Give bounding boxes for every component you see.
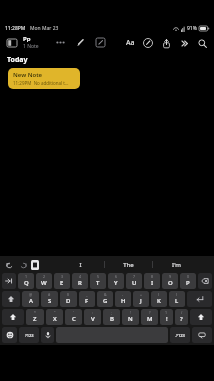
button[interactable]: + (133, 291, 149, 307)
button[interactable]: Tab (2, 273, 16, 289)
button[interactable]: Search (194, 35, 210, 51)
button[interactable]: Switch keyboard (192, 327, 212, 343)
staticText: H (121, 297, 126, 305)
button[interactable]: : (84, 309, 101, 325)
staticText: 9 (169, 274, 172, 279)
staticText: * (34, 310, 36, 315)
button[interactable]: - (115, 291, 131, 307)
staticText: 1 (165, 310, 168, 315)
staticText: O (168, 279, 173, 287)
button[interactable]: _ (79, 291, 95, 307)
button[interactable]: Markup (73, 35, 88, 50)
staticText: - (122, 292, 124, 297)
staticText: ?123 (25, 333, 34, 338)
button[interactable]: New Note (8, 68, 80, 89)
staticText: $ (67, 292, 70, 297)
button[interactable]: Clipboard (31, 260, 39, 270)
staticText: I (151, 279, 154, 287)
staticText: B (110, 315, 114, 323)
button[interactable]: Show sidebar (4, 35, 20, 51)
button[interactable]: Expand (176, 35, 192, 51)
button[interactable]: Share (158, 35, 174, 51)
button[interactable]: Emoji (2, 327, 17, 343)
button[interactable]: " (46, 309, 63, 325)
staticText: 1 (25, 274, 28, 279)
button[interactable]: Format (122, 35, 138, 51)
button[interactable]: ' (65, 309, 82, 325)
staticText: Q (24, 279, 29, 287)
button[interactable]: Shift (190, 309, 212, 325)
staticText: R (78, 279, 82, 287)
staticText: S (48, 297, 52, 305)
button[interactable]: ; (103, 309, 120, 325)
button[interactable]: ! (122, 309, 139, 325)
staticText: C (72, 315, 76, 323)
staticText: ( (158, 292, 160, 297)
button[interactable]: * (26, 309, 44, 325)
staticText: X (53, 315, 57, 323)
staticText: 0 (187, 274, 190, 279)
button[interactable]: .?123 (170, 327, 190, 343)
button[interactable]: # (41, 291, 58, 307)
button[interactable]: The (105, 258, 152, 271)
button[interactable]: ? (141, 309, 158, 325)
button[interactable]: 0 (180, 273, 196, 289)
button[interactable]: @ (22, 291, 39, 307)
button[interactable]: 5 (90, 273, 106, 289)
button[interactable]: 6 (108, 273, 124, 289)
button[interactable]: 4 (72, 273, 88, 289)
button[interactable]: Voice input (41, 327, 54, 343)
staticText: A (29, 297, 33, 305)
staticText: Mon Mar 23 (30, 25, 59, 32)
button[interactable]: 1 (18, 273, 34, 289)
staticText: ) (176, 292, 178, 297)
staticText: T (96, 279, 100, 287)
button[interactable]: Enter (187, 291, 212, 307)
staticText: New Note (13, 71, 43, 79)
staticText: 5 (97, 274, 100, 279)
button[interactable]: Undo (3, 259, 15, 271)
staticText: P (186, 279, 190, 287)
button[interactable]: ) (169, 291, 185, 307)
staticText: I (79, 261, 82, 269)
button[interactable]: 1 (160, 309, 173, 325)
button[interactable]: Shift (2, 291, 20, 307)
button[interactable]: 7 (126, 273, 142, 289)
button[interactable]: Shift (2, 309, 24, 325)
button[interactable]: Redo (17, 259, 29, 271)
button[interactable]: 8 (144, 273, 160, 289)
staticText: Z (33, 315, 37, 323)
staticText: 91% (187, 25, 197, 32)
staticText: The (123, 261, 134, 269)
staticText: ? (180, 315, 183, 323)
staticText: 8 (151, 274, 154, 279)
button[interactable]: 9 (162, 273, 178, 289)
staticText: M (147, 315, 153, 323)
button[interactable]: I (57, 258, 104, 271)
staticText: N (128, 315, 133, 323)
staticText: 7 (133, 274, 136, 279)
staticText: V (91, 315, 95, 323)
button[interactable]: 3 (54, 273, 70, 289)
button[interactable]: I'm (153, 258, 200, 271)
button[interactable]: / (175, 309, 188, 325)
staticText: U (132, 279, 137, 287)
button[interactable]: Markup tools (140, 35, 156, 51)
staticText: # (48, 292, 51, 297)
staticText: + (140, 292, 143, 297)
button[interactable]: & (97, 291, 113, 307)
staticText: I'm (172, 261, 181, 269)
button[interactable]: 2 (36, 273, 52, 289)
staticText: K (157, 297, 161, 305)
staticText: Y (114, 279, 118, 287)
button[interactable]: $ (60, 291, 77, 307)
staticText: ' (73, 310, 74, 315)
button[interactable]: Backspace (198, 273, 212, 289)
button[interactable]: ?123 (19, 327, 39, 343)
button[interactable]: More options (53, 35, 68, 50)
button[interactable]: New note (93, 35, 108, 50)
button[interactable]: Pp (23, 35, 39, 50)
button[interactable]: ( (151, 291, 167, 307)
staticText: F (85, 297, 89, 305)
